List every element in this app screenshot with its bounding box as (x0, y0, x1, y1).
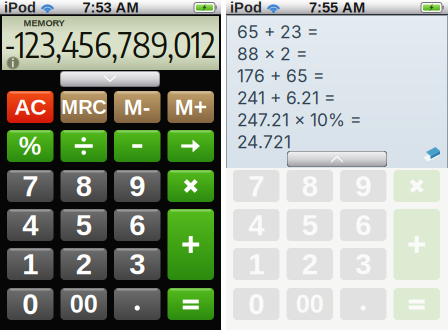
button[interactable]: AC (7, 91, 53, 123)
button[interactable]: 7 (233, 170, 279, 202)
staticText: 3 (129, 248, 145, 280)
button[interactable]: Hide keypad (60, 71, 160, 87)
staticText: iPod (230, 0, 262, 16)
button[interactable]: MRC (60, 91, 107, 123)
staticText: 7:55 AM (309, 0, 365, 16)
button[interactable]: 0 (233, 288, 279, 320)
staticText: MEMORY (23, 18, 64, 28)
button[interactable]: 8 (286, 170, 333, 202)
staticText: 7:53 AM (82, 0, 138, 16)
staticText: M- (124, 94, 151, 120)
staticText: 0 (248, 288, 264, 320)
staticText: 24.721 (237, 131, 291, 152)
staticText: iPod (4, 0, 36, 16)
button[interactable]: Minus (114, 130, 160, 162)
staticText: 8 (302, 170, 318, 202)
staticText: 0 (22, 288, 38, 320)
button[interactable]: . (340, 288, 386, 320)
staticText: 176 + 65 = (237, 65, 324, 86)
staticText: 5 (302, 209, 318, 241)
button[interactable]: 9 (340, 170, 386, 202)
staticText: 65 + 23 = (237, 21, 318, 42)
staticText: 00 (70, 290, 98, 318)
button[interactable]: Plus (167, 209, 214, 280)
staticText: 2 (76, 248, 92, 280)
button[interactable]: 5 (60, 209, 107, 241)
staticText: 00 (296, 290, 324, 318)
staticText: 5 (76, 209, 92, 241)
staticText: -123,456,789,012 (4, 22, 216, 66)
staticText: 9 (355, 170, 371, 202)
staticText: % (19, 132, 42, 160)
button[interactable]: 8 (60, 170, 107, 202)
button[interactable]: 1 (7, 248, 53, 280)
staticText: 241 + 6.21 = (237, 87, 335, 108)
button[interactable]: 1 (233, 248, 279, 280)
staticText: M+ (175, 94, 207, 120)
button[interactable]: Divide (60, 130, 107, 162)
staticText: 6 (355, 209, 371, 241)
staticText: 247.21 × 10% = (237, 109, 361, 130)
button[interactable]: Multiply (167, 170, 214, 202)
button[interactable]: Clear tape (422, 146, 442, 166)
button[interactable]: 00 (60, 288, 107, 320)
staticText: 3 (355, 248, 371, 280)
button[interactable]: 00 (286, 288, 333, 320)
button[interactable]: 4 (7, 209, 53, 241)
button[interactable]: Show keypad (287, 151, 387, 167)
staticText: 4 (248, 209, 264, 241)
button[interactable]: 9 (114, 170, 160, 202)
button[interactable]: 6 (340, 209, 386, 241)
button[interactable]: Enter (167, 130, 214, 162)
button[interactable]: 7 (7, 170, 53, 202)
button[interactable]: . (114, 288, 160, 320)
staticText: 4 (22, 209, 38, 241)
button[interactable]: Equals (393, 288, 440, 320)
button[interactable]: M+ (167, 91, 214, 123)
button[interactable]: 3 (114, 248, 160, 280)
button[interactable]: 5 (286, 209, 333, 241)
button[interactable]: 2 (286, 248, 333, 280)
staticText: 9 (129, 170, 145, 202)
button[interactable]: 0 (7, 288, 53, 320)
button[interactable]: 3 (340, 248, 386, 280)
staticText: 2 (302, 248, 318, 280)
button[interactable]: M- (114, 91, 160, 123)
button[interactable]: 2 (60, 248, 107, 280)
staticText: MRC (61, 96, 106, 118)
staticText: 8 (76, 170, 92, 202)
staticText: AC (14, 94, 46, 120)
button[interactable]: Equals (167, 288, 214, 320)
button[interactable]: Plus (393, 209, 440, 280)
staticText: 1 (248, 248, 264, 280)
staticText: 1 (22, 248, 38, 280)
staticText: 88 × 2 = (237, 43, 307, 64)
staticText: 7 (248, 170, 264, 202)
button[interactable]: 6 (114, 209, 160, 241)
button[interactable]: 4 (233, 209, 279, 241)
button[interactable]: % (7, 130, 53, 162)
staticText: i (11, 56, 14, 70)
button[interactable]: Multiply (393, 170, 440, 202)
staticText: 6 (129, 209, 145, 241)
staticText: 7 (22, 170, 38, 202)
